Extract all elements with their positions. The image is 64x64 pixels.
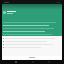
button[interactable] (3, 56, 61, 59)
button[interactable] (3, 40, 61, 42)
button[interactable]: Search (30, 60, 35, 64)
button[interactable] (3, 5, 61, 20)
button[interactable] (3, 37, 61, 39)
button[interactable] (3, 27, 61, 29)
button[interactable] (3, 21, 61, 23)
button[interactable] (3, 33, 61, 35)
button[interactable]: Profile (46, 60, 51, 64)
button[interactable] (3, 43, 61, 45)
button[interactable] (3, 24, 61, 26)
button[interactable] (3, 46, 61, 48)
button[interactable] (3, 30, 61, 32)
button[interactable]: Home (13, 60, 18, 64)
